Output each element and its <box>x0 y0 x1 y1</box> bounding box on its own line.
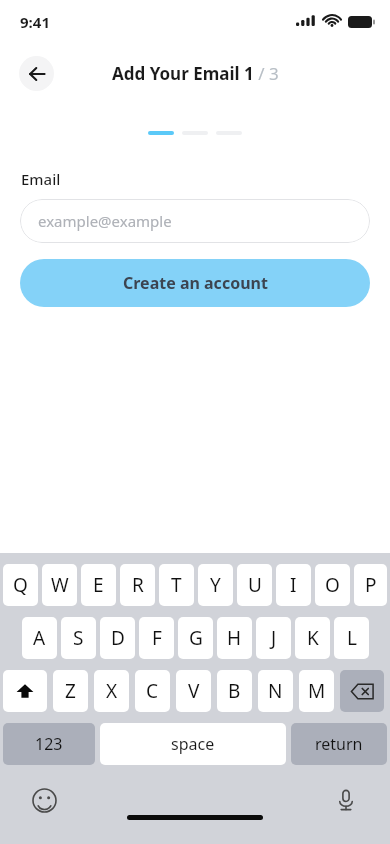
button[interactable]: A <box>22 617 57 659</box>
staticText: C <box>146 678 159 704</box>
staticText: space <box>171 733 215 755</box>
staticText: V <box>188 678 200 704</box>
button[interactable]: S <box>61 617 96 659</box>
button[interactable]: U <box>237 564 272 606</box>
button[interactable]: D <box>100 617 135 659</box>
staticText: Create an account <box>123 272 268 294</box>
staticText: Z <box>65 678 76 704</box>
staticText: X <box>106 678 118 704</box>
button[interactable]: G <box>178 617 213 659</box>
staticText: S <box>73 625 84 651</box>
staticText: U <box>248 572 262 598</box>
staticText: return <box>315 733 363 755</box>
button[interactable]: E <box>81 564 116 606</box>
staticText: N <box>268 678 283 704</box>
button[interactable]: Shift <box>3 670 47 712</box>
button[interactable]: T <box>159 564 194 606</box>
button[interactable]: Dictate <box>332 786 360 814</box>
staticText: M <box>308 678 326 704</box>
staticText: Y <box>210 572 221 598</box>
staticText: L <box>347 625 357 651</box>
button[interactable]: J <box>256 617 291 659</box>
button[interactable]: N <box>258 670 293 712</box>
button[interactable]: Emoji <box>30 786 58 814</box>
button[interactable]: K <box>295 617 330 659</box>
staticText: G <box>189 625 203 651</box>
staticText: A <box>33 625 46 651</box>
button[interactable]: F <box>139 617 174 659</box>
staticText: P <box>365 572 377 598</box>
button[interactable]: Z <box>53 670 88 712</box>
button[interactable]: X <box>94 670 129 712</box>
staticText: H <box>227 625 242 651</box>
button[interactable]: Q <box>3 564 38 606</box>
staticText: 9:41 <box>20 12 50 32</box>
button[interactable]: L <box>334 617 369 659</box>
button[interactable]: W <box>42 564 77 606</box>
staticText: J <box>271 625 277 651</box>
staticText: B <box>228 678 241 704</box>
button[interactable]: M <box>299 670 334 712</box>
button[interactable]: Y <box>198 564 233 606</box>
staticText: Q <box>13 572 28 598</box>
staticText: W <box>51 572 69 598</box>
button[interactable]: H <box>217 617 252 659</box>
staticText: Add Your Email 1 / 3 <box>112 62 279 85</box>
button[interactable]: Backspace <box>340 670 384 712</box>
button[interactable]: 123 <box>3 723 95 765</box>
button[interactable]: B <box>217 670 252 712</box>
button[interactable]: C <box>135 670 170 712</box>
button[interactable]: O <box>315 564 350 606</box>
button[interactable]: V <box>176 670 211 712</box>
button[interactable]: space <box>100 723 286 765</box>
staticText: example@example <box>38 211 172 231</box>
staticText: D <box>111 625 125 651</box>
button[interactable]: example@example <box>20 199 370 243</box>
button[interactable]: Back <box>19 56 54 91</box>
staticText: T <box>171 572 182 598</box>
staticText: F <box>152 625 162 651</box>
staticText: 123 <box>35 733 63 755</box>
button[interactable]: R <box>120 564 155 606</box>
staticText: O <box>325 572 340 598</box>
staticText: Email <box>21 169 61 189</box>
staticText: R <box>132 572 144 598</box>
staticText: K <box>307 625 319 651</box>
button[interactable]: Create an account <box>20 259 370 307</box>
staticText: I <box>290 572 297 598</box>
staticText: E <box>93 572 104 598</box>
button[interactable]: P <box>354 564 387 606</box>
button[interactable]: I <box>276 564 311 606</box>
button[interactable]: return <box>291 723 387 765</box>
